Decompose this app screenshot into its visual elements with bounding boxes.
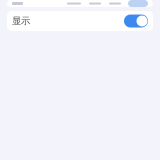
button[interactable]: 显示 [7, 11, 153, 31]
button[interactable]: Previous setting [7, 0, 153, 7]
staticText: 显示 [12, 15, 30, 27]
